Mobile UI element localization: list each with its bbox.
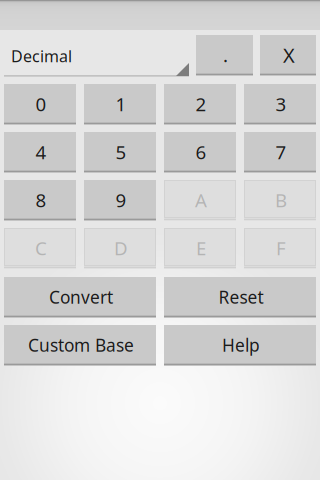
- staticText: 8: [35, 188, 46, 212]
- button[interactable]: D: [84, 227, 156, 267]
- button[interactable]: 4: [4, 131, 76, 171]
- button[interactable]: 1: [84, 83, 156, 123]
- staticText: D: [114, 236, 128, 260]
- staticText: 5: [115, 140, 126, 164]
- button[interactable]: Convert: [4, 276, 156, 316]
- button[interactable]: X: [260, 34, 316, 74]
- staticText: 7: [275, 140, 286, 164]
- staticText: 2: [195, 92, 206, 116]
- staticText: .: [223, 43, 228, 67]
- staticText: 0: [35, 92, 46, 116]
- button[interactable]: F: [244, 227, 316, 267]
- staticText: 3: [275, 92, 286, 116]
- staticText: Help: [222, 333, 260, 356]
- button[interactable]: C: [4, 227, 76, 267]
- staticText: Reset: [218, 285, 263, 308]
- button[interactable]: .: [196, 34, 253, 74]
- staticText: E: [196, 236, 206, 260]
- staticText: Decimal: [11, 45, 72, 67]
- button[interactable]: Custom Base: [4, 324, 156, 364]
- staticText: X: [283, 42, 295, 68]
- button[interactable]: 8: [4, 179, 76, 219]
- button[interactable]: 6: [164, 131, 236, 171]
- button[interactable]: 7: [244, 131, 316, 171]
- button[interactable]: Decimal: [0, 32, 186, 78]
- button[interactable]: 5: [84, 131, 156, 171]
- button[interactable]: A: [164, 179, 236, 219]
- staticText: F: [276, 236, 286, 260]
- button[interactable]: 9: [84, 179, 156, 219]
- button[interactable]: B: [244, 179, 316, 219]
- staticText: 9: [115, 188, 126, 212]
- staticText: Custom Base: [28, 333, 134, 356]
- staticText: C: [35, 236, 47, 260]
- staticText: 4: [35, 140, 46, 164]
- button[interactable]: 3: [244, 83, 316, 123]
- staticText: A: [195, 188, 207, 212]
- staticText: 6: [195, 140, 206, 164]
- staticText: B: [275, 188, 287, 212]
- button[interactable]: 0: [4, 83, 76, 123]
- staticText: Convert: [49, 285, 113, 308]
- button[interactable]: Help: [164, 324, 316, 364]
- button[interactable]: 2: [164, 83, 236, 123]
- button[interactable]: E: [164, 227, 236, 267]
- staticText: 1: [115, 92, 126, 116]
- button[interactable]: Reset: [164, 276, 316, 316]
